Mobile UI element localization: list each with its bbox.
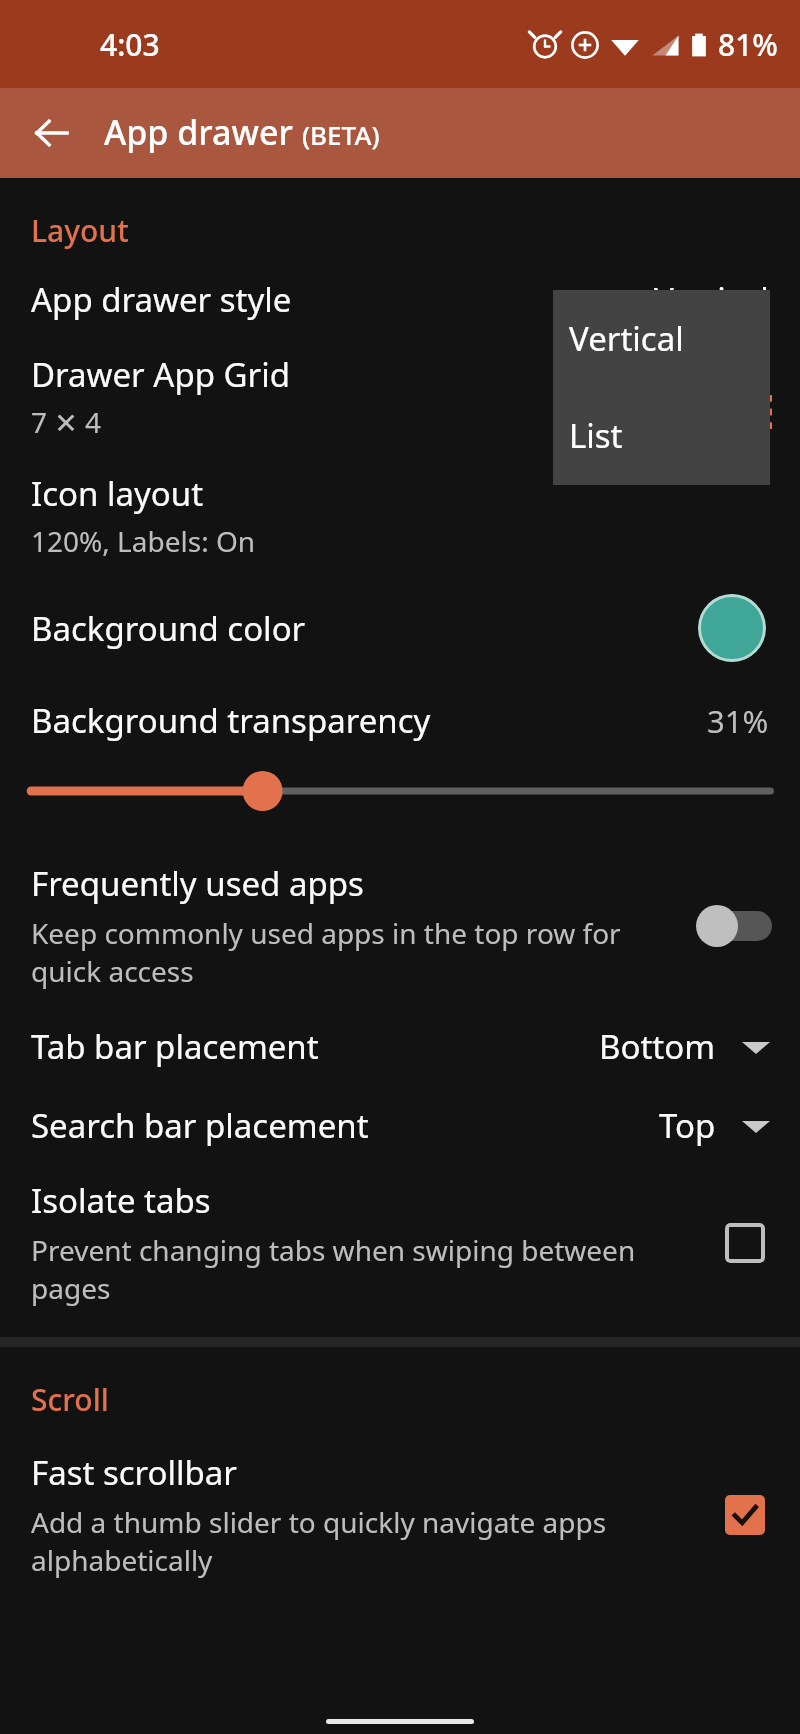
button[interactable]: Icon layout [0,471,800,560]
staticText: Icon layout [31,471,204,516]
button[interactable]: List [553,387,770,484]
staticText: Drawer App Grid [31,352,291,397]
staticText: Scroll [31,1379,109,1420]
button[interactable]: Isolate tabs [0,1178,800,1307]
button[interactable]: Back [22,103,82,163]
staticText: Keep commonly used apps in the top row f… [31,914,676,990]
staticText: Vertical [569,316,684,361]
staticText: Vertical [654,277,769,322]
button[interactable]: Vertical [553,290,770,387]
button[interactable]: Background color [0,594,800,662]
staticText: (BETA) [302,117,380,152]
button[interactable]: Frequently used apps toggle [696,903,772,949]
staticText: List [569,413,623,458]
staticText: 81% [718,24,778,65]
staticText: Add a thumb slider to quickly navigate a… [31,1503,698,1579]
staticText: 31% [707,700,769,742]
staticText: Tab bar placement [31,1024,599,1069]
button[interactable]: App drawer style [0,277,800,322]
staticText: Background transparency [31,698,707,743]
staticText: Fast scrollbar [31,1450,237,1495]
staticText: 4:03 [100,24,160,65]
staticText: 120%, Labels: On [31,522,256,560]
button[interactable]: Fast scrollbar [0,1450,800,1579]
staticText: 7 ✕ 4 [31,403,102,441]
staticText: Background color [31,606,698,651]
button[interactable]: Checked [718,1488,772,1542]
staticText: App drawer [104,109,302,155]
button[interactable]: Tab bar placement [0,1024,800,1069]
staticText: App drawer style [31,277,654,322]
staticText: Layout [31,210,129,251]
staticText: Isolate tabs [31,1178,211,1223]
button[interactable]: Unchecked [718,1216,772,1270]
staticText: Prevent changing tabs when swiping betwe… [31,1231,698,1307]
staticText: Top [659,1103,716,1148]
button[interactable]: Frequently used apps [0,861,800,990]
button[interactable]: Search bar placement [0,1103,800,1148]
staticText: Search bar placement [31,1103,659,1148]
staticText: Frequently used apps [31,861,364,906]
staticText: Bottom [599,1024,716,1069]
